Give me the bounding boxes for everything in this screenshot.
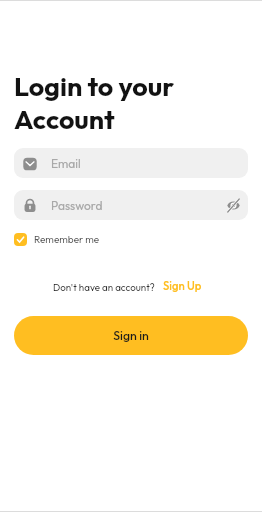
button[interactable]: Show password xyxy=(223,195,243,215)
staticText: Don't have an account? xyxy=(53,281,155,293)
button[interactable]: Password xyxy=(14,190,248,220)
button[interactable]: Remember me xyxy=(14,233,100,246)
button[interactable]: Sign in xyxy=(14,316,248,355)
staticText: Login to your Account xyxy=(14,69,175,136)
button[interactable]: Sign Up xyxy=(163,279,202,293)
staticText: Sign in xyxy=(113,328,149,343)
staticText: Sign Up xyxy=(163,279,202,293)
button[interactable]: Email xyxy=(14,148,248,178)
staticText: Email xyxy=(51,156,81,171)
staticText: Remember me xyxy=(34,233,100,246)
staticText: Password xyxy=(51,198,223,213)
